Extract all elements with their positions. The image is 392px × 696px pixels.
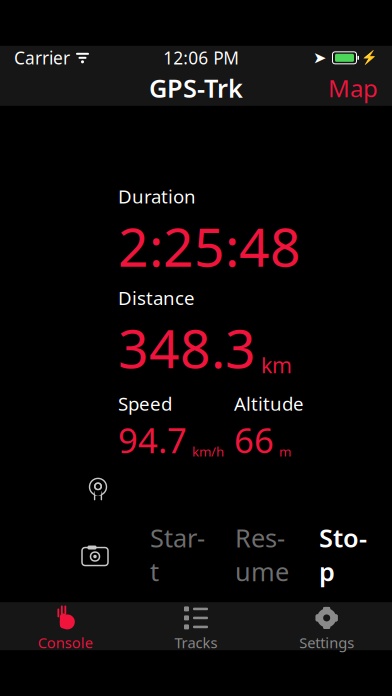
staticText: Speed	[118, 391, 172, 416]
staticText: 348.3	[118, 312, 256, 383]
staticText: Duration	[118, 184, 196, 209]
staticText: GPS-Trk	[149, 71, 243, 105]
staticText: Map	[328, 72, 378, 104]
button[interactable]: Console	[0, 602, 131, 650]
staticText: 66	[234, 417, 274, 463]
staticText: Distance	[118, 285, 195, 310]
button[interactable]: Settings	[261, 602, 392, 650]
staticText: ➤	[313, 49, 326, 67]
staticText: Settings	[299, 633, 354, 652]
button[interactable]: Tracks	[131, 602, 261, 650]
button[interactable]: Resume	[227, 515, 297, 594]
staticText: 94.7	[118, 417, 187, 463]
staticText: km	[261, 351, 292, 379]
button[interactable]: Map	[314, 70, 392, 106]
staticText: Stop	[319, 521, 367, 588]
staticText: Resume	[235, 521, 289, 588]
staticText: Start	[150, 521, 205, 588]
staticText: 2:25:48	[118, 211, 301, 281]
staticText: 12:06 PM	[163, 46, 239, 69]
staticText: Carrier	[14, 46, 70, 69]
staticText: Tracks	[174, 633, 217, 652]
staticText: m	[279, 443, 291, 460]
button[interactable]: Stop	[311, 515, 375, 594]
button[interactable]: Start	[142, 515, 213, 594]
staticText: km/h	[192, 443, 224, 460]
staticText: ⚡	[361, 50, 378, 65]
staticText: Console	[38, 633, 93, 652]
button[interactable]: Show location	[79, 475, 117, 507]
staticText: Altitude	[234, 391, 304, 416]
button[interactable]: Take photo	[76, 537, 114, 571]
